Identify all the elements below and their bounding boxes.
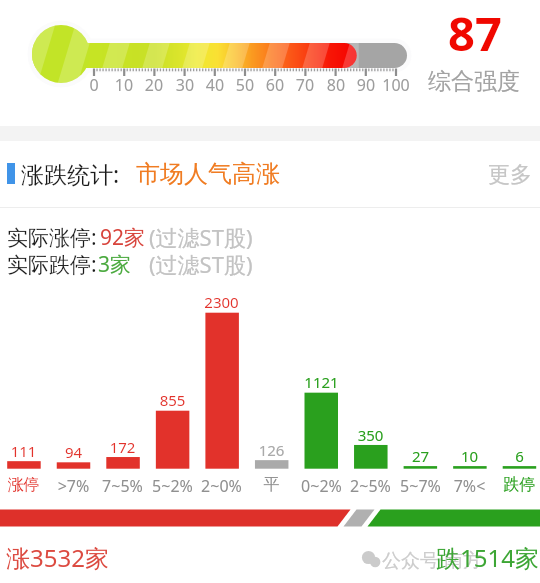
staticText: 80 bbox=[312, 74, 360, 96]
button[interactable]: 5~2% bbox=[148, 475, 197, 497]
staticText: 111 bbox=[0, 441, 48, 461]
staticText: 7~5% bbox=[98, 475, 147, 497]
staticText: 1121 bbox=[297, 372, 346, 392]
button[interactable]: >7% bbox=[49, 475, 98, 497]
staticText: 平 bbox=[247, 475, 296, 495]
staticText: 10 bbox=[445, 446, 494, 466]
button[interactable]: 涨停 bbox=[0, 475, 48, 495]
staticText: 30 bbox=[161, 74, 209, 96]
staticText: 0 bbox=[70, 74, 118, 96]
staticText: (过滤ST股) bbox=[149, 222, 253, 252]
staticText: 20 bbox=[130, 74, 178, 96]
button[interactable]: 5~7% bbox=[396, 475, 445, 497]
staticText: 855 bbox=[148, 390, 197, 410]
staticText: 涨3532家 bbox=[6, 541, 109, 574]
staticText: 2~5% bbox=[346, 475, 395, 497]
staticText: 跌1514家 bbox=[436, 541, 539, 574]
staticText: 市场人气高涨 bbox=[136, 159, 280, 189]
staticText: 5~2% bbox=[148, 475, 197, 497]
staticText: 60 bbox=[251, 74, 299, 96]
staticText: 350 bbox=[346, 425, 395, 445]
staticText: 5~7% bbox=[396, 475, 445, 497]
button[interactable]: 0~2% bbox=[297, 475, 346, 497]
other: WeChat bbox=[361, 551, 383, 569]
staticText: 90 bbox=[342, 74, 390, 96]
button[interactable]: 平 bbox=[247, 475, 296, 495]
staticText: 70 bbox=[281, 74, 329, 96]
staticText: 94 bbox=[49, 442, 98, 462]
staticText: 实际跌停: bbox=[7, 250, 97, 279]
staticText: 综合强度 bbox=[428, 67, 520, 96]
staticText: 27 bbox=[396, 446, 445, 466]
staticText: 172 bbox=[98, 437, 147, 457]
staticText: 公众号·南方 bbox=[382, 547, 483, 573]
staticText: 0~2% bbox=[297, 475, 346, 497]
button[interactable]: 更多 bbox=[475, 148, 540, 202]
staticText: 6 bbox=[495, 446, 540, 466]
button[interactable]: 7%< bbox=[445, 475, 494, 497]
staticText: 92家 bbox=[100, 223, 146, 252]
button[interactable]: 7~5% bbox=[98, 475, 147, 497]
staticText: 40 bbox=[191, 74, 239, 96]
staticText: 126 bbox=[247, 440, 296, 460]
staticText: (过滤ST股) bbox=[149, 249, 253, 279]
staticText: >7% bbox=[49, 475, 98, 497]
staticText: 实际涨停: bbox=[7, 223, 97, 252]
staticText: 50 bbox=[221, 74, 269, 96]
staticText: 2~0% bbox=[197, 475, 246, 497]
staticText: 更多 bbox=[488, 161, 532, 189]
staticText: 涨停 bbox=[0, 475, 48, 495]
staticText: 跌停 bbox=[495, 475, 540, 495]
staticText: 10 bbox=[100, 74, 148, 96]
button[interactable]: 2~5% bbox=[346, 475, 395, 497]
staticText: 2300 bbox=[197, 292, 246, 312]
staticText: 100 bbox=[372, 74, 420, 96]
staticText: 涨跌统计: bbox=[21, 158, 120, 189]
button[interactable]: 2~0% bbox=[197, 475, 246, 497]
staticText: 3家 bbox=[98, 250, 132, 279]
staticText: 7%< bbox=[445, 475, 494, 497]
staticText: 87 bbox=[448, 1, 502, 65]
button[interactable]: 跌停 bbox=[495, 475, 540, 495]
